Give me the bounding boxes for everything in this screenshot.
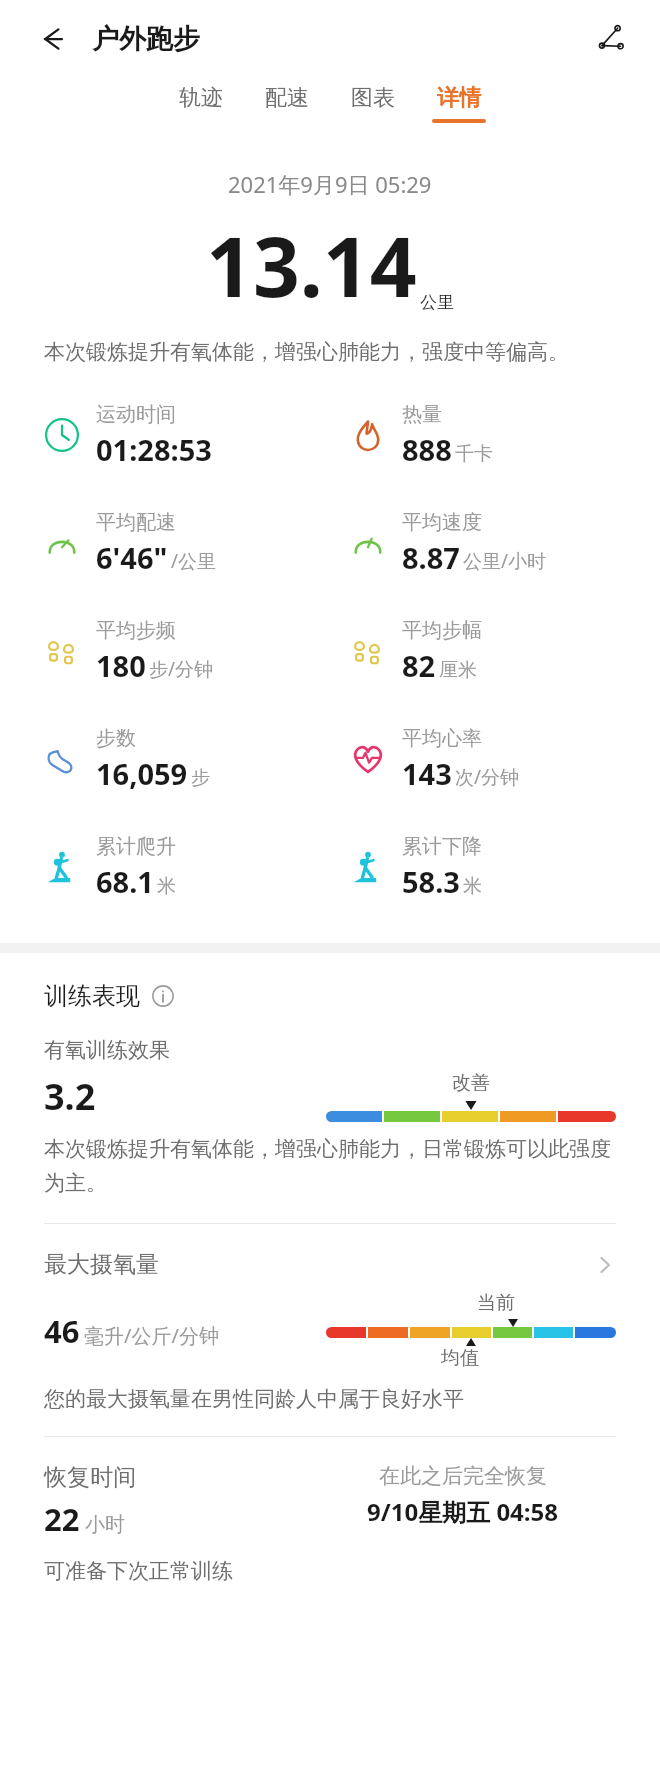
button[interactable]: 图表 [330,78,416,129]
staticText: 180 [96,646,146,685]
staticText: 2021年9月9日 05:29 [228,169,432,199]
staticText: 3.2 [44,1072,96,1121]
staticText: 46 [44,1310,80,1352]
button[interactable]: 平均心率 [346,705,520,813]
staticText: 步/分钟 [149,656,214,682]
button[interactable]: 平均步幅 [346,597,482,705]
staticText: 您的最大摄氧量在男性同龄人中属于良好水平 [44,1386,464,1412]
staticText: 小时 [85,1512,125,1537]
staticText: 轨迹 [179,84,223,112]
staticText: 有氧训练效果 [44,1037,170,1063]
staticText: 累计下降 [402,834,482,859]
staticText: 配速 [265,84,309,112]
staticText: 平均速度 [402,510,482,535]
staticText: 143 [402,754,452,793]
staticText: 均值 [441,1346,479,1370]
button[interactable]: 累计下降 [346,813,482,921]
staticText: 公里 [420,292,454,313]
staticText: 22 [44,1498,80,1540]
staticText: 8.87 [402,538,460,577]
staticText: 千卡 [455,442,493,466]
staticText: 户外跑步 [92,22,200,56]
staticText: 米 [463,874,482,898]
staticText: 详情 [437,84,481,112]
staticText: /公里 [171,548,217,574]
button[interactable]: 平均步频 [40,597,214,705]
button[interactable]: 轨迹 [158,78,244,129]
staticText: 公里/小时 [463,548,547,574]
staticText: 改善 [452,1071,490,1095]
staticText: 热量 [402,402,442,427]
staticText: 厘米 [439,658,477,682]
staticText: 本次锻炼提升有氧体能，增强心肺能力，日常锻炼可以此强度为主。 [44,1136,616,1197]
staticText: 恢复时间 [44,1463,136,1492]
staticText: 累计爬升 [96,834,176,859]
staticText: 步 [191,766,210,790]
staticText: 毫升/公斤/分钟 [84,1322,219,1349]
staticText: 训练表现 [44,981,140,1011]
staticText: 次/分钟 [455,764,520,790]
staticText: 可准备下次正常训练 [44,1558,233,1584]
button[interactable]: 配速 [244,78,330,129]
button[interactable]: 步数 [40,705,210,813]
staticText: 16,059 [96,754,188,793]
staticText: 平均步频 [96,618,176,643]
staticText: 运动时间 [96,402,176,427]
staticText: 图表 [351,84,395,112]
button[interactable]: 最大摄氧量 [44,1250,616,1279]
button[interactable]: 累计爬升 [40,813,176,921]
staticText: 平均配速 [96,510,176,535]
staticText: 13.14 [206,209,417,321]
staticText: 本次锻炼提升有氧体能，增强心肺能力，强度中等偏高。 [44,339,616,365]
staticText: 68.1 [96,862,154,901]
button[interactable]: Share [586,14,636,64]
staticText: 当前 [477,1291,515,1315]
staticText: 6'46" [96,538,168,577]
button[interactable]: 平均速度 [346,489,547,597]
staticText: 82 [402,646,436,685]
staticText: 平均步幅 [402,618,482,643]
button[interactable]: 平均配速 [40,489,217,597]
staticText: 888 [402,430,452,469]
staticText: 01:28:53 [96,430,212,469]
staticText: 平均心率 [402,726,482,751]
staticText: 步数 [96,726,136,751]
staticText: 9/10星期五 04:58 [367,1495,559,1528]
button[interactable]: 详情 [416,78,502,129]
staticText: 米 [157,874,176,898]
button[interactable]: 热量 [346,381,493,489]
staticText: 在此之后完全恢复 [379,1463,547,1489]
button[interactable]: 运动时间 [40,381,212,489]
button[interactable]: Info [150,983,176,1009]
button[interactable]: Back [30,16,76,62]
staticText: 最大摄氧量 [44,1250,159,1279]
staticText: 58.3 [402,862,460,901]
